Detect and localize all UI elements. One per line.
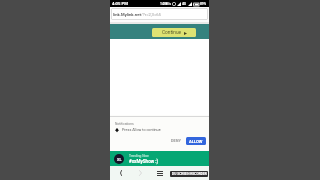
staticText: Trending Now — [129, 154, 149, 158]
staticText: /?r=2,3=65 — [141, 12, 161, 17]
staticText: 4G — [182, 2, 187, 6]
staticText: 89% — [200, 2, 207, 6]
staticText: Notifications — [115, 122, 134, 126]
button[interactable]: XL — [110, 151, 209, 166]
staticText: link.Mylink.net — [113, 12, 141, 17]
staticText: DENY — [171, 138, 181, 143]
staticText: XL — [117, 157, 122, 161]
staticText: DU SCREEN RECORDER — [172, 172, 207, 176]
staticText: 148B/s — [160, 2, 171, 6]
button[interactable]: ALLOW — [186, 137, 206, 145]
button[interactable]: DENY — [169, 136, 183, 145]
staticText: #xxMyShow :) — [129, 159, 159, 164]
staticText: Press Allow to continue — [122, 128, 161, 132]
button[interactable]: Continue — [152, 28, 196, 37]
staticText: ALLOW — [189, 139, 203, 144]
button[interactable]: Menu — [152, 166, 168, 180]
staticText: Continue — [162, 30, 182, 36]
staticText: 4:05 PM — [112, 1, 128, 6]
button[interactable]: Forward — [132, 166, 148, 180]
button[interactable]: Back — [113, 166, 129, 180]
button[interactable]: link.Mylink.net — [111, 8, 208, 20]
